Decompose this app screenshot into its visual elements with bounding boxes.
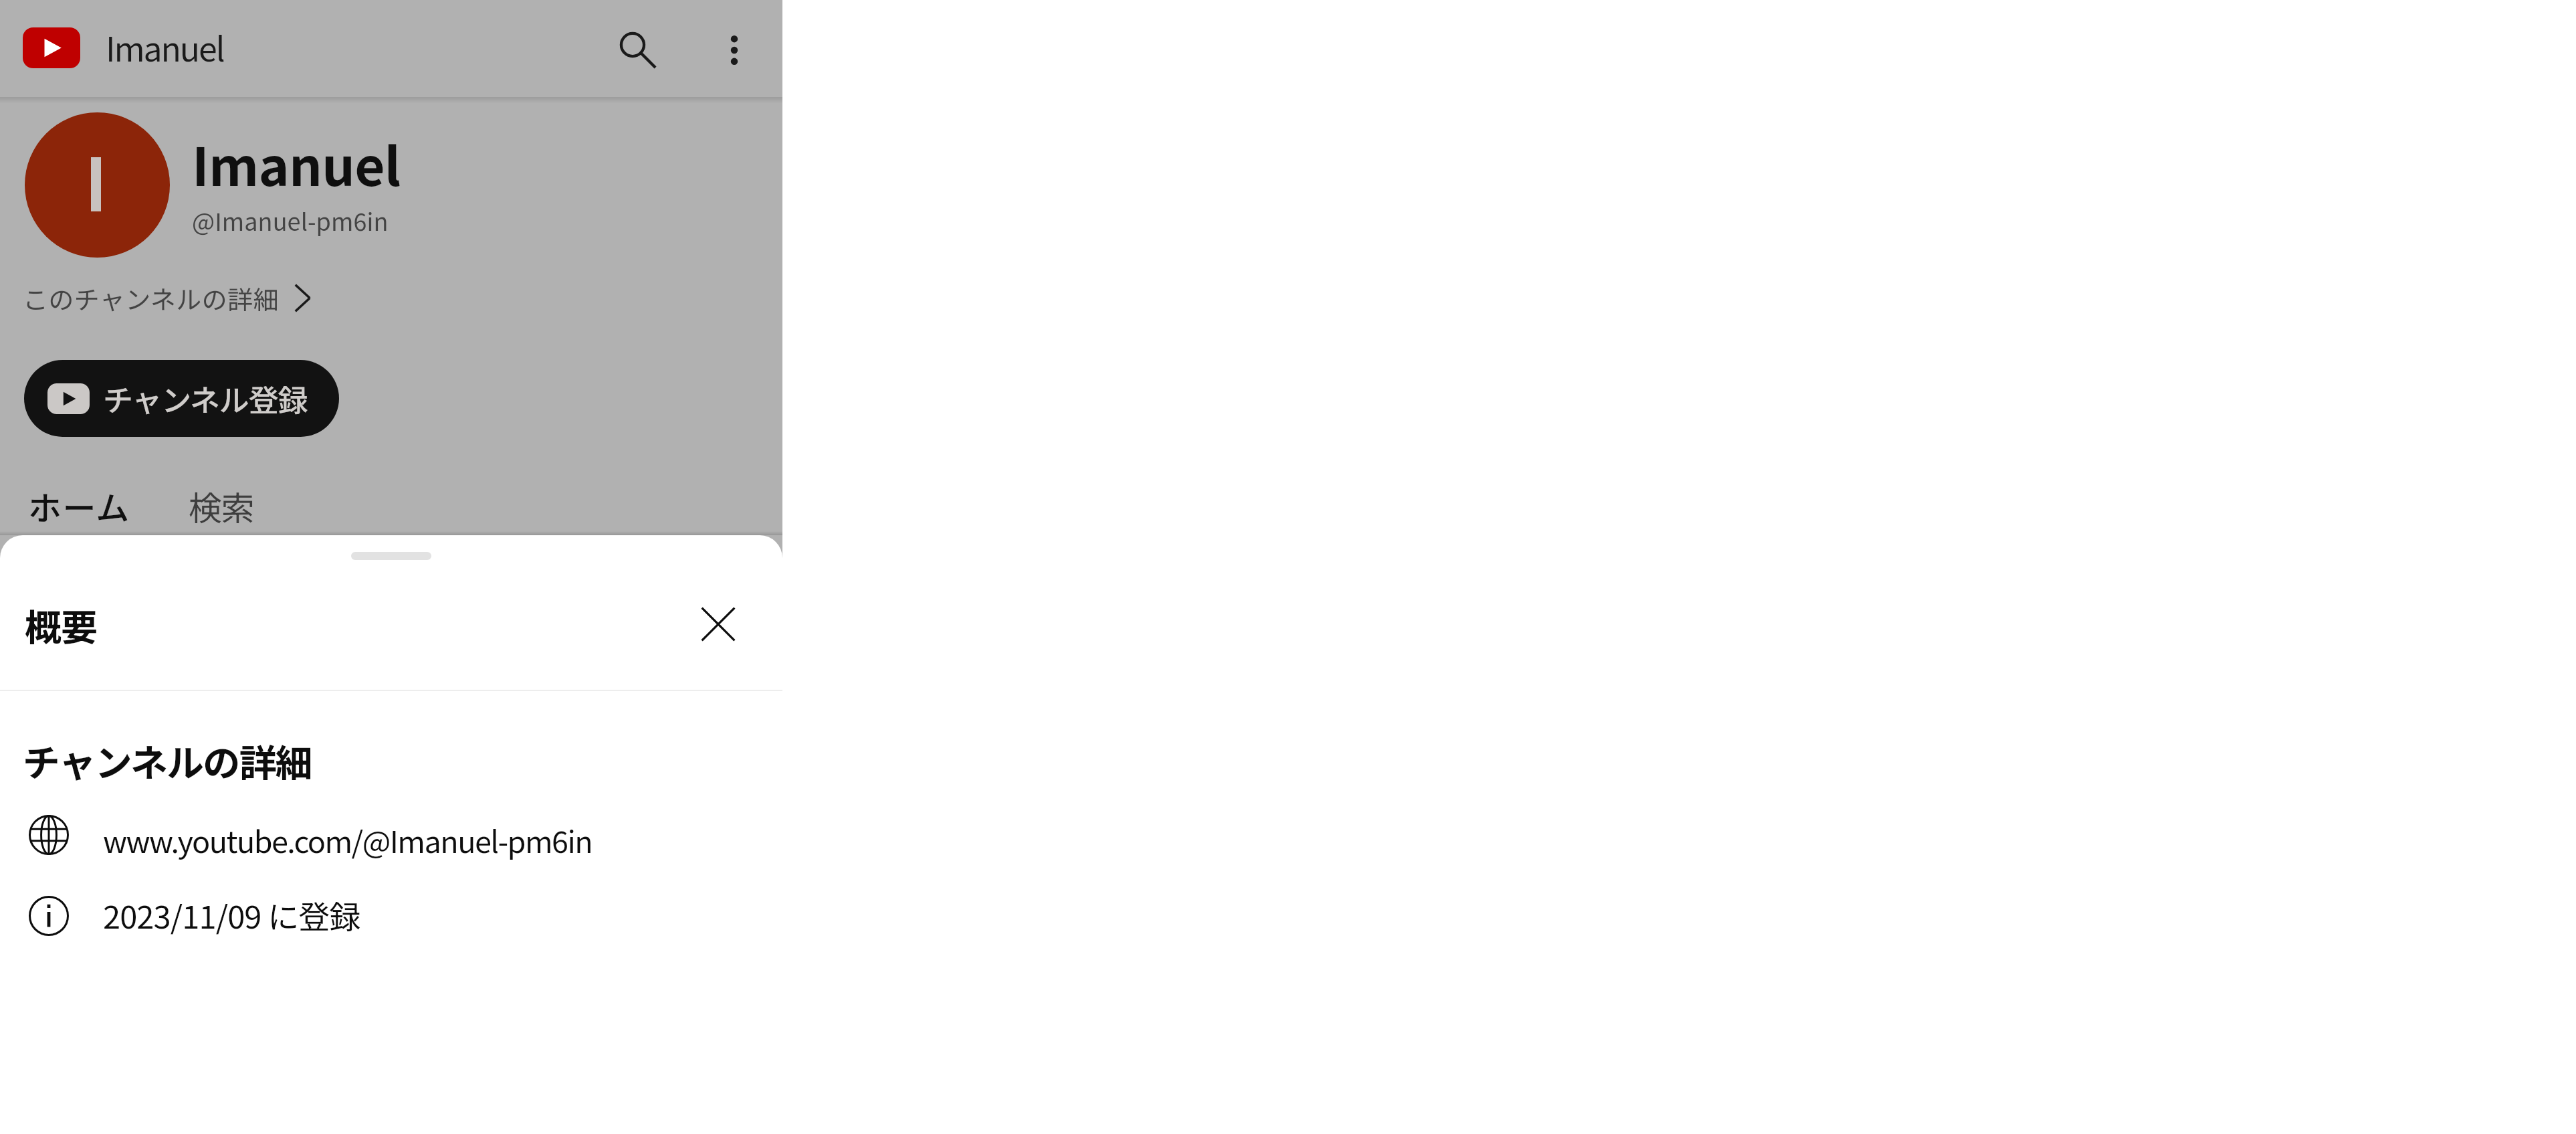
- button[interactable]: ホーム: [8, 472, 150, 539]
- staticText: このチャンネルの詳細: [23, 280, 279, 316]
- staticText: ホーム: [28, 482, 130, 530]
- staticText: Imanuel: [106, 23, 224, 71]
- button[interactable]: このチャンネルの詳細: [13, 273, 321, 323]
- button[interactable]: @Imanuel-pm6in: [192, 203, 389, 238]
- staticText: 概要: [25, 598, 98, 652]
- button[interactable]: Channel avatar: [25, 112, 170, 258]
- staticText: www.youtube.com/@Imanuel-pm6in: [103, 818, 593, 862]
- staticText: チャンネル登録: [103, 377, 308, 420]
- staticText: 2023/11/09 に登録: [103, 892, 360, 937]
- button[interactable]: 2023/11/09 に登録: [0, 875, 782, 943]
- button[interactable]: チャンネル登録: [24, 360, 339, 437]
- staticText: @Imanuel-pm6in: [192, 203, 389, 238]
- button[interactable]: More options: [693, 9, 776, 92]
- button[interactable]: www.youtube.com/@Imanuel-pm6in: [0, 800, 782, 868]
- button[interactable]: Close: [687, 593, 749, 655]
- staticText: チャンネルの詳細: [23, 733, 312, 787]
- staticText: Imanuel: [192, 126, 401, 201]
- staticText: 検索: [189, 482, 253, 530]
- button[interactable]: 検索: [169, 472, 274, 539]
- button[interactable]: YouTube home: [23, 27, 80, 68]
- button[interactable]: Search: [597, 9, 679, 92]
- button[interactable]: Imanuel: [106, 23, 224, 71]
- button[interactable]: Imanuel: [192, 126, 401, 201]
